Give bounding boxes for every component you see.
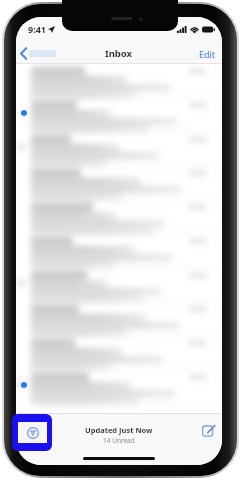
button[interactable] bbox=[16, 370, 222, 404]
staticText: 14 Unread bbox=[103, 436, 135, 445]
button[interactable] bbox=[16, 98, 222, 132]
button[interactable] bbox=[16, 268, 222, 302]
other: Back to Mailboxes bbox=[19, 47, 28, 60]
button[interactable]: Back to Mailboxes bbox=[19, 47, 56, 60]
button[interactable] bbox=[16, 302, 222, 336]
button[interactable]: Compose bbox=[198, 420, 218, 440]
staticText: Edit bbox=[199, 48, 216, 60]
staticText: Inbox bbox=[105, 47, 133, 60]
button[interactable]: Filter bbox=[21, 422, 45, 443]
button[interactable] bbox=[16, 64, 222, 98]
button[interactable]: Edit bbox=[199, 48, 222, 60]
button[interactable] bbox=[16, 234, 222, 268]
button[interactable] bbox=[16, 336, 222, 370]
staticText: Updated Just Now bbox=[85, 425, 153, 435]
button[interactable] bbox=[16, 132, 222, 166]
staticText: 9:41 bbox=[28, 23, 46, 35]
button[interactable] bbox=[16, 166, 222, 200]
button[interactable] bbox=[16, 200, 222, 234]
